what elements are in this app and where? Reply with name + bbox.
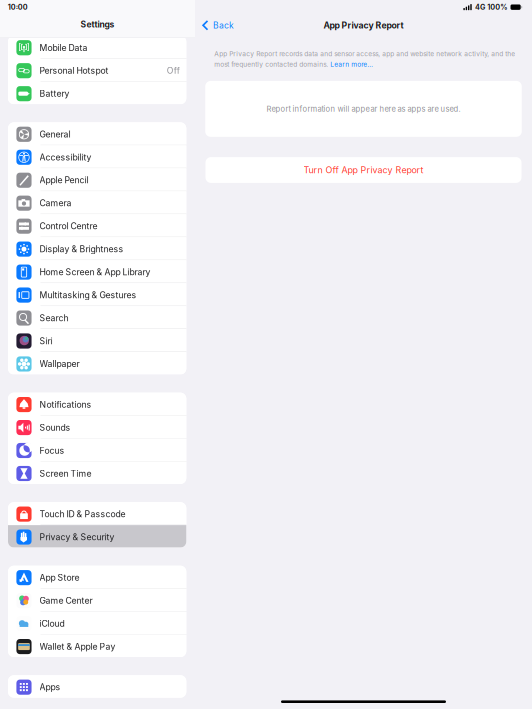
staticText: App Privacy Report [323,20,403,31]
staticText: Back [213,20,234,30]
button[interactable]: iCloud [8,612,186,634]
button[interactable]: Search [8,306,186,329]
staticText: Notifications [39,399,91,410]
staticText: Multitasking & Gestures [39,290,136,300]
staticText: App Store [39,572,79,583]
staticText: Battery [39,88,69,99]
staticText: Display & Brightness [39,244,123,254]
staticText: Screen Time [39,468,91,479]
button[interactable]: Privacy & Security [8,525,186,548]
button[interactable]: Multitasking & Gestures [8,283,186,306]
staticText: Privacy & Security [39,532,114,542]
button[interactable]: Accessibility [8,145,186,168]
button[interactable]: Wallet & Apple Pay [8,635,186,657]
staticText: 10:00 [8,3,28,11]
button[interactable]: Home Screen & App Library [8,260,186,283]
button[interactable]: Apple Pencil [8,168,186,191]
staticText: Focus [39,445,64,456]
button[interactable]: Display & Brightness [8,237,186,260]
staticText: Home Screen & App Library [39,267,150,277]
staticText: Search [39,313,68,323]
staticText: Wallet & Apple Pay [39,641,115,652]
staticText: Camera [39,198,71,208]
button[interactable]: Battery [8,82,186,104]
button[interactable]: Mobile Data [8,36,186,58]
button[interactable]: Game Center [8,589,186,611]
button[interactable]: Screen Time [8,461,186,484]
staticText: 100% [487,3,507,11]
button[interactable]: Wallpaper [8,352,186,374]
button[interactable]: App Store [8,566,186,588]
staticText: Control Centre [39,221,97,231]
button[interactable]: Control Centre [8,214,186,237]
button[interactable]: Camera [8,191,186,214]
button[interactable]: Notifications [8,393,186,415]
button[interactable]: Personal Hotspot [8,59,186,81]
staticText: iCloud [39,618,64,629]
staticText: Learn more… [330,60,373,68]
staticText: Apple Pencil [39,175,88,185]
button[interactable]: Sounds [8,416,186,438]
staticText: Apps [39,682,60,692]
staticText: Mobile Data [39,42,87,53]
staticText: Off [167,65,180,76]
staticText: Sounds [39,422,70,433]
button[interactable]: General [8,122,186,145]
staticText: Personal Hotspot [39,65,108,76]
staticText: Siri [39,336,52,346]
button[interactable]: Apps [8,675,186,698]
staticText: 4G [475,3,485,11]
staticText: Turn Off App Privacy Report [303,165,423,175]
button[interactable]: Turn Off App Privacy Report [205,157,521,183]
button[interactable]: Siri [8,329,186,352]
button[interactable]: Back [195,14,240,36]
staticText: Accessibility [39,152,91,162]
staticText: App Privacy Report records data and sens… [214,50,515,58]
staticText: Touch ID & Passcode [39,509,125,519]
staticText: Report information will appear here as a… [266,104,460,113]
button[interactable]: Focus [8,439,186,461]
staticText: most frequently contacted domains. [214,60,330,68]
staticText: Game Center [39,595,92,606]
staticText: Wallpaper [39,359,79,369]
button[interactable]: Touch ID & Passcode [8,502,186,525]
staticText: Settings [80,19,114,30]
staticText: General [39,129,70,139]
